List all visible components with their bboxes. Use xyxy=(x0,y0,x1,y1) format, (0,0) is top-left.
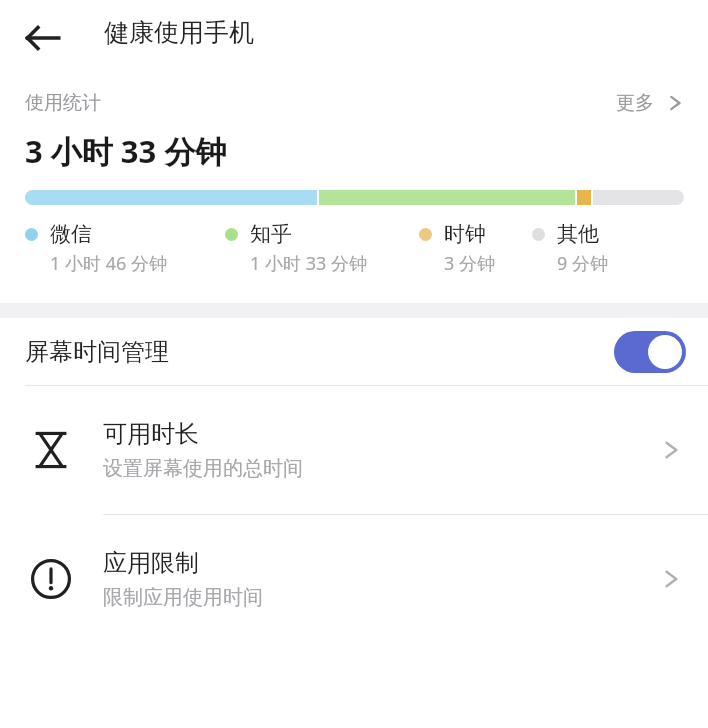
button[interactable]: 屏幕时间管理 xyxy=(0,318,708,385)
staticText: 9 分钟 xyxy=(557,251,608,276)
button[interactable]: Screen time management toggle xyxy=(614,331,686,373)
button[interactable]: Alert xyxy=(0,515,708,643)
staticText: 使用统计 xyxy=(25,91,101,115)
staticText: 知乎 xyxy=(250,221,292,247)
staticText: 应用限制 xyxy=(103,548,199,578)
staticText: 更多 xyxy=(616,91,654,115)
staticText: 其他 xyxy=(557,221,599,247)
other: Alert xyxy=(25,553,77,605)
staticText: 屏幕时间管理 xyxy=(25,337,169,367)
staticText: 限制应用使用时间 xyxy=(103,585,263,610)
staticText: 3 小时 33 分钟 xyxy=(25,130,227,172)
button[interactable]: Back xyxy=(14,12,66,64)
staticText: 可用时长 xyxy=(103,419,199,449)
staticText: 健康使用手机 xyxy=(104,17,254,48)
staticText: 设置屏幕使用的总时间 xyxy=(103,456,303,481)
staticText: 1 小时 46 分钟 xyxy=(50,251,167,276)
staticText: 时钟 xyxy=(444,221,486,247)
staticText: 微信 xyxy=(50,221,92,247)
other: Hourglass xyxy=(25,424,77,476)
staticText: 3 分钟 xyxy=(444,251,495,276)
staticText: 1 小时 33 分钟 xyxy=(250,251,367,276)
button[interactable]: 更多 xyxy=(616,91,686,115)
button[interactable]: Hourglass xyxy=(0,386,708,514)
